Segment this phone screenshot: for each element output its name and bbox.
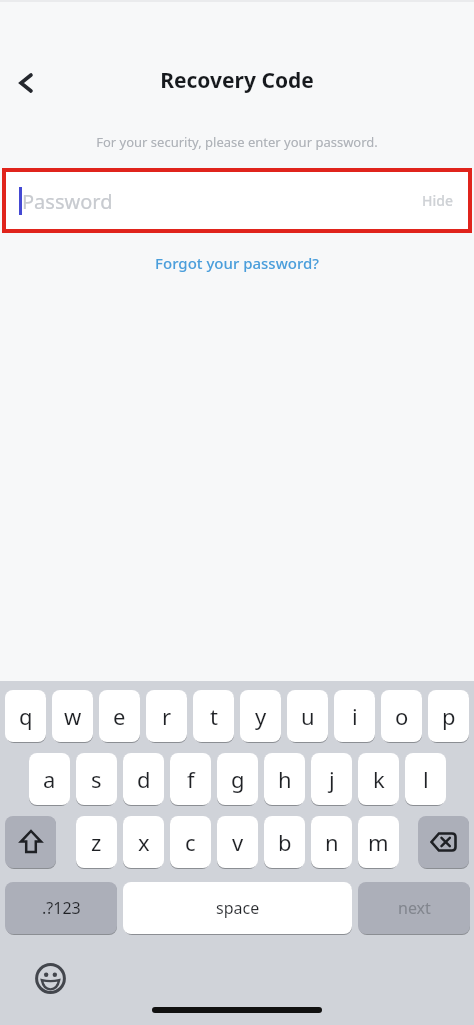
button[interactable]: k — [358, 753, 399, 805]
staticText: x — [138, 827, 150, 857]
staticText: Password — [22, 188, 113, 215]
staticText: k — [373, 764, 385, 794]
button[interactable]: j — [311, 753, 352, 805]
staticText: q — [19, 701, 33, 731]
button[interactable]: n — [311, 816, 352, 868]
button[interactable]: r — [146, 690, 187, 742]
button[interactable]: f — [170, 753, 211, 805]
staticText: next — [398, 897, 431, 919]
staticText: n — [325, 827, 339, 857]
button[interactable]: v — [217, 816, 258, 868]
button[interactable]: next — [358, 882, 470, 934]
button[interactable]: s — [76, 753, 117, 805]
button[interactable]: m — [358, 816, 399, 868]
button[interactable]: space — [123, 882, 352, 934]
staticText: j — [329, 764, 335, 794]
button[interactable] — [33, 961, 68, 996]
staticText: z — [91, 827, 102, 857]
staticText: m — [368, 827, 389, 857]
staticText: p — [442, 701, 456, 731]
staticText: l — [423, 764, 429, 794]
button[interactable]: .?123 — [5, 882, 117, 934]
staticText: space — [216, 897, 260, 919]
staticText: For your security, please enter your pas… — [0, 133, 474, 151]
staticText: v — [232, 827, 244, 857]
button[interactable]: t — [193, 690, 234, 742]
button[interactable]: l — [405, 753, 446, 805]
button[interactable]: Forgot your password? — [0, 253, 474, 273]
button[interactable]: h — [264, 753, 305, 805]
staticText: g — [231, 764, 245, 794]
staticText: b — [278, 827, 292, 857]
button[interactable] — [8, 65, 44, 101]
staticText: w — [64, 701, 82, 731]
staticText: i — [352, 701, 358, 731]
button[interactable]: p — [428, 690, 469, 742]
staticText: u — [301, 701, 315, 731]
staticText: a — [43, 764, 56, 794]
staticText: c — [185, 827, 196, 857]
staticText: d — [137, 764, 151, 794]
staticText: y — [255, 701, 267, 731]
staticText: f — [187, 764, 195, 794]
staticText: o — [395, 701, 409, 731]
button[interactable]: i — [334, 690, 375, 742]
button[interactable]: y — [240, 690, 281, 742]
staticText: Recovery Code — [0, 66, 474, 95]
button[interactable]: w — [52, 690, 93, 742]
staticText: t — [210, 701, 218, 731]
staticText: e — [113, 701, 126, 731]
staticText: s — [91, 764, 102, 794]
button[interactable]: x — [123, 816, 164, 868]
button[interactable]: e — [99, 690, 140, 742]
button[interactable] — [418, 816, 469, 868]
button[interactable]: c — [170, 816, 211, 868]
staticText: h — [278, 764, 292, 794]
button[interactable]: d — [123, 753, 164, 805]
button[interactable]: o — [381, 690, 422, 742]
button[interactable]: q — [5, 690, 46, 742]
button[interactable]: z — [76, 816, 117, 868]
staticText: r — [162, 701, 172, 731]
button[interactable] — [5, 816, 56, 868]
button[interactable]: Password — [6, 172, 468, 229]
button[interactable]: g — [217, 753, 258, 805]
button[interactable]: a — [29, 753, 70, 805]
button[interactable]: b — [264, 816, 305, 868]
staticText: Hide — [422, 191, 453, 210]
button[interactable]: u — [287, 690, 328, 742]
staticText: .?123 — [42, 897, 81, 919]
